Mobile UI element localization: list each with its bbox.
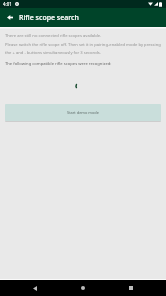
button[interactable]: Start demo mode (5, 104, 161, 121)
staticText: 4:01 (3, 1, 12, 7)
button[interactable]: Home (59, 280, 107, 296)
staticText: Rifle scope search (19, 13, 79, 23)
staticText: Start demo mode (67, 110, 99, 115)
button[interactable]: Back (11, 280, 59, 296)
button[interactable]: Back (0, 8, 19, 27)
staticText: The following compatible rifle scopes we… (5, 61, 112, 67)
button[interactable]: Recents (107, 280, 155, 296)
staticText: There are still no connected rifle scope… (5, 33, 161, 55)
